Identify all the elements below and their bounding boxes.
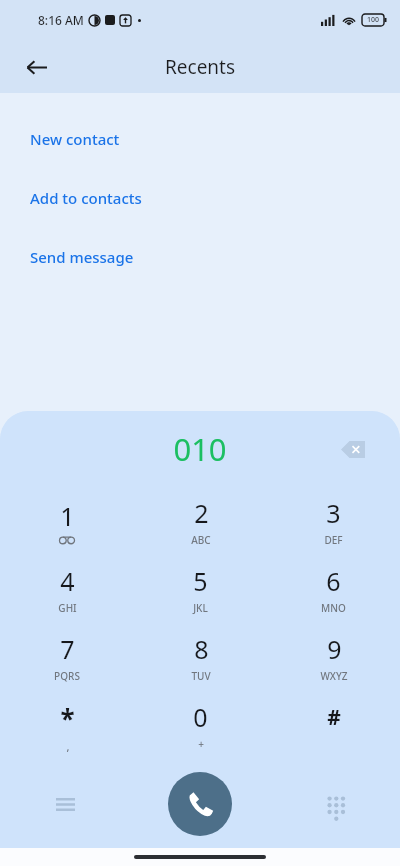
staticText: 0 <box>193 700 208 734</box>
staticText: New contact <box>30 129 120 149</box>
staticText: Recents <box>165 54 236 80</box>
button[interactable]: Menu <box>44 783 86 825</box>
button[interactable]: New contact <box>0 109 400 168</box>
staticText: + <box>198 737 204 751</box>
staticText: 9 <box>327 632 342 666</box>
staticText: WXYZ <box>320 669 348 683</box>
button[interactable]: 3 <box>267 487 400 555</box>
button[interactable]: Dialpad <box>314 783 356 825</box>
button[interactable]: # <box>267 691 400 759</box>
button[interactable]: 8 <box>134 623 267 691</box>
staticText: GHI <box>58 601 77 615</box>
staticText: * <box>60 701 75 736</box>
staticText: 100 <box>367 15 380 25</box>
button[interactable]: Back <box>14 45 58 89</box>
button[interactable]: Add to contacts <box>0 168 400 227</box>
staticText: 5 <box>193 564 208 598</box>
staticText: TUV <box>191 669 211 683</box>
staticText: 7 <box>60 632 75 666</box>
button[interactable]: 0 <box>134 691 267 759</box>
staticText: MNO <box>321 601 346 615</box>
button[interactable]: Call <box>168 772 232 836</box>
staticText: 3 <box>326 496 341 530</box>
staticText: 4 <box>60 564 75 598</box>
staticText: DEF <box>324 533 343 547</box>
button[interactable]: 6 <box>267 555 400 623</box>
button[interactable]: 4 <box>0 555 134 623</box>
button[interactable]: Send message <box>0 227 400 286</box>
button[interactable]: * <box>0 691 134 759</box>
staticText: ABC <box>191 533 211 547</box>
staticText: JKL <box>193 601 208 615</box>
button[interactable]: 5 <box>134 555 267 623</box>
staticText: PQRS <box>54 669 80 683</box>
button[interactable]: 1 <box>0 487 134 555</box>
staticText: 010 <box>173 428 227 470</box>
staticText: 8 <box>194 632 209 666</box>
staticText: 6 <box>326 564 341 598</box>
staticText: 2 <box>194 496 209 530</box>
staticText: , <box>66 739 70 754</box>
button[interactable]: 9 <box>267 623 400 691</box>
button[interactable]: Backspace <box>333 429 373 469</box>
button[interactable]: 7 <box>0 623 134 691</box>
staticText: 8:16 AM <box>38 12 84 28</box>
button[interactable]: 2 <box>134 487 267 555</box>
staticText: 1 <box>60 499 75 533</box>
staticText: # <box>327 703 341 732</box>
staticText: Add to contacts <box>30 188 142 208</box>
staticText: Send message <box>30 247 134 267</box>
